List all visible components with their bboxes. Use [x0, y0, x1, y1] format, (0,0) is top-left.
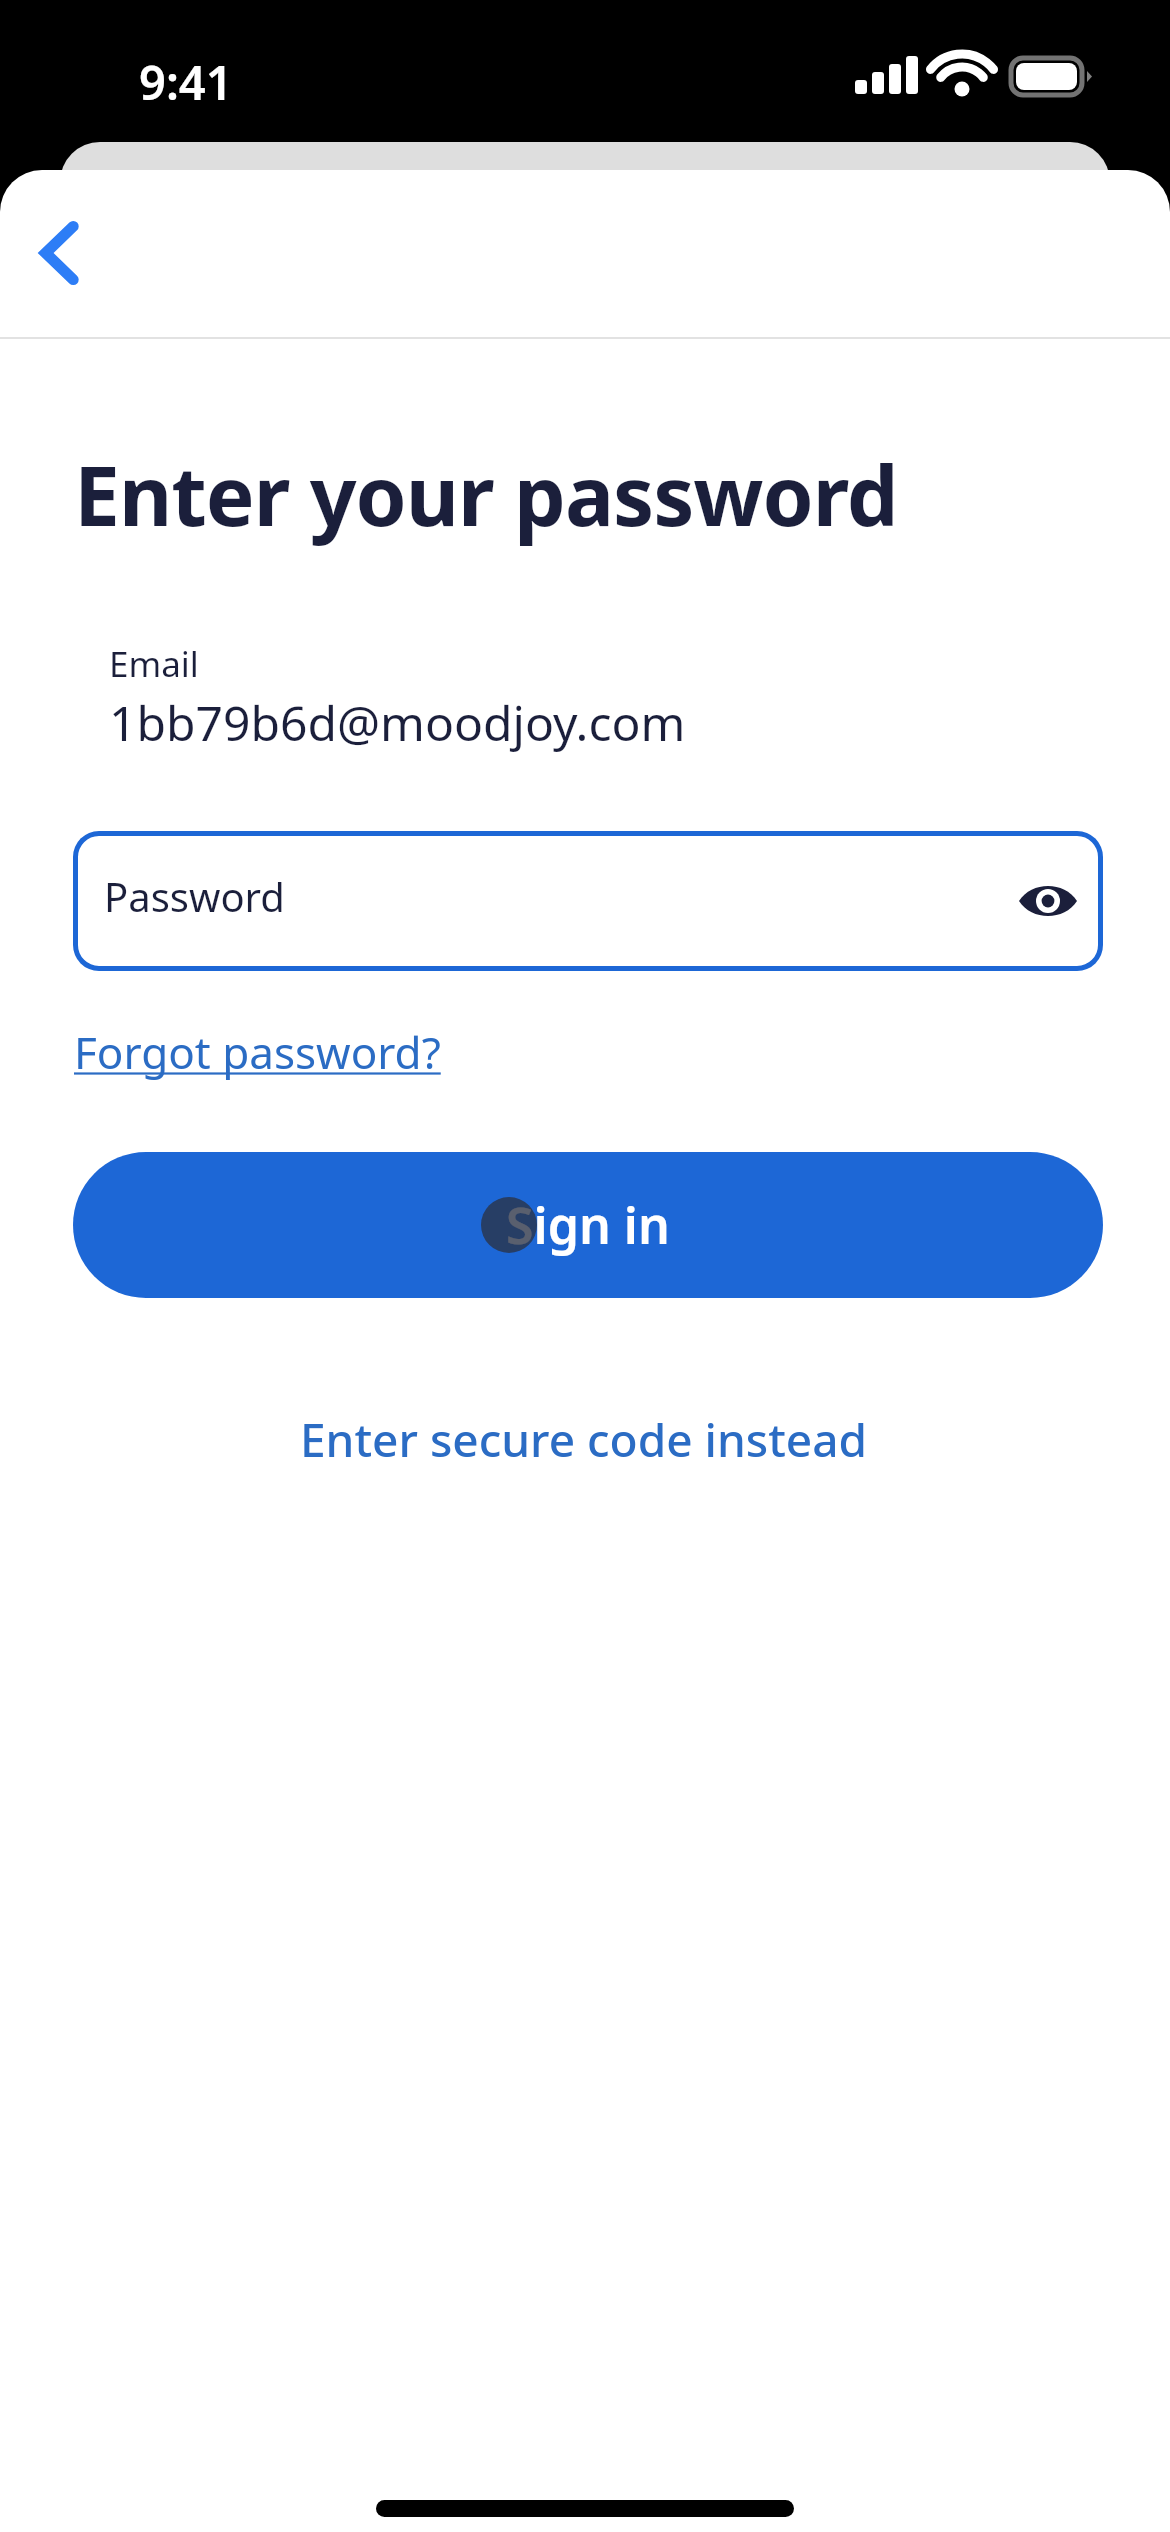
staticText: Email [109, 640, 199, 688]
button[interactable]: Forgot password? [74, 1022, 441, 1082]
button[interactable]: Password [73, 831, 1103, 971]
button[interactable]: Back [0, 170, 120, 335]
staticText: 1bb79b6d@moodjoy.com [109, 690, 686, 755]
staticText: Password [104, 869, 285, 923]
button[interactable]: Enter secure code instead [300, 1408, 868, 1471]
button[interactable]: Sign in [73, 1152, 1103, 1298]
staticText: Forgot password? [74, 1022, 441, 1082]
button[interactable]: Show password [993, 846, 1103, 956]
staticText: 9:41 [139, 50, 233, 114]
staticText: Sign in [506, 1191, 670, 1259]
staticText: Enter your password [74, 438, 898, 550]
staticText: Enter secure code instead [300, 1408, 868, 1471]
